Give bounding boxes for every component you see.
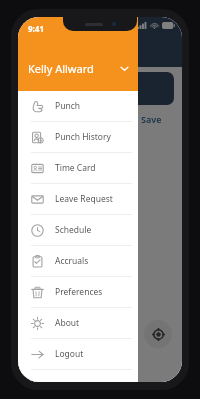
button[interactable]: Locate <box>144 320 172 348</box>
button[interactable]: Save <box>141 113 162 125</box>
button[interactable]: About <box>18 308 138 338</box>
button[interactable]: Punch <box>18 91 138 121</box>
staticText: Leave Request <box>55 193 113 205</box>
button[interactable]: Schedule <box>18 215 138 245</box>
staticText: Kelly Allward <box>28 61 94 76</box>
staticText: Logout <box>55 348 84 360</box>
button[interactable]: Accruals <box>18 246 138 276</box>
staticText: Time Card <box>55 162 96 174</box>
button[interactable]: Preferences <box>18 277 138 307</box>
button[interactable]: Kelly Allward <box>28 61 129 76</box>
staticText: Punch History <box>55 131 111 143</box>
button[interactable]: Leave Request <box>18 184 138 214</box>
staticText: Schedule <box>55 224 92 236</box>
button[interactable]: Logout <box>18 339 138 369</box>
button[interactable]: Punch History <box>18 122 138 152</box>
button[interactable]: Time Card <box>18 153 138 183</box>
staticText: About <box>55 317 80 329</box>
staticText: 9:41 <box>28 23 44 34</box>
staticText: Accruals <box>55 255 89 267</box>
staticText: Punch <box>55 100 80 112</box>
staticText: Preferences <box>55 286 103 298</box>
